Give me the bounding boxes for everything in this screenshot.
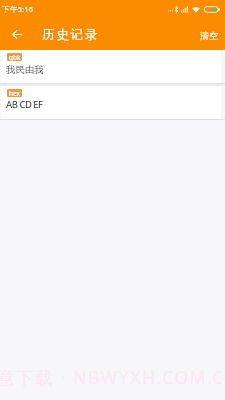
staticText: 我民由我 [6,64,44,76]
staticText: 清空 [200,30,218,41]
staticText: AB CD EF [6,98,43,111]
staticText: 历史记录 [42,27,99,43]
staticText: gbk [9,53,21,61]
button[interactable]: gbk [1,50,221,83]
staticText: 意下载 · NBWYXH.COM.C [0,365,222,389]
staticText: 下午5:16 [2,4,34,15]
button[interactable]: Back [6,23,28,45]
staticText: hex [9,89,20,97]
button[interactable]: 清空 [193,24,225,45]
button[interactable]: hex [1,86,221,119]
